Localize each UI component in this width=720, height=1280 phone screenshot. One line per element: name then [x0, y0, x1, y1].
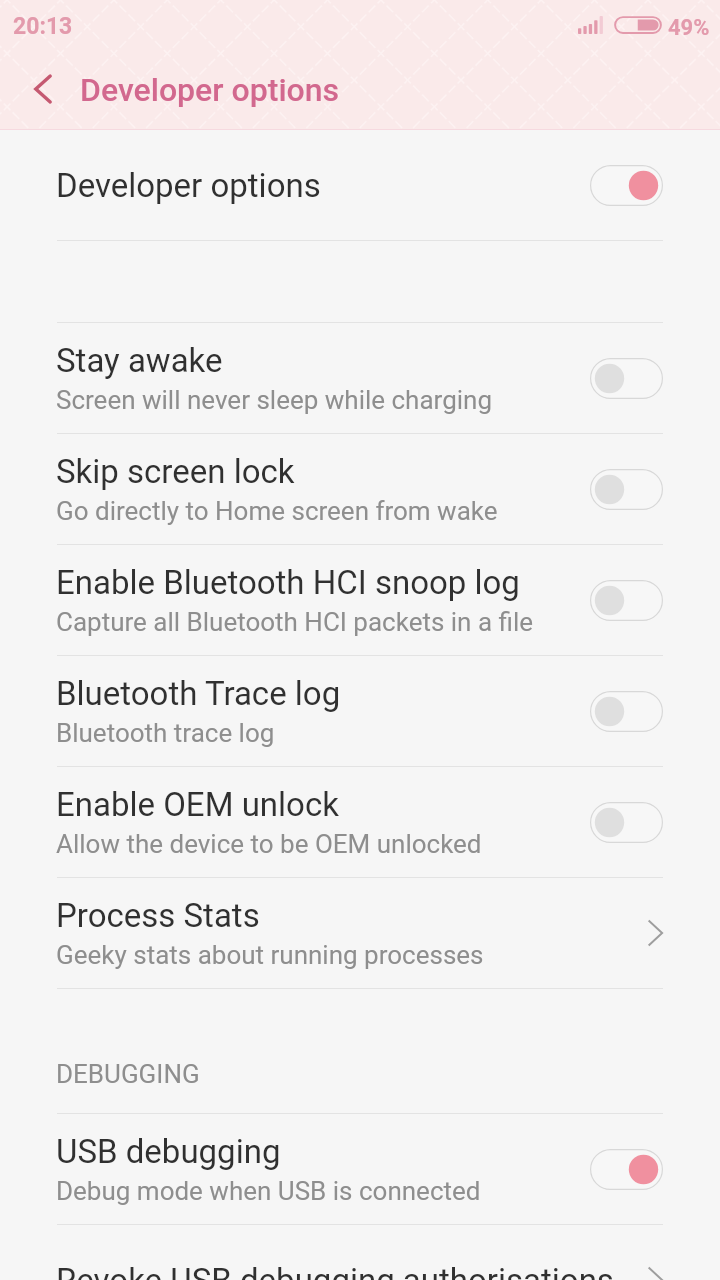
button[interactable]: Toggle on	[589, 159, 663, 211]
staticText: Process Stats	[56, 896, 260, 935]
button[interactable]: Toggle on	[589, 1143, 663, 1195]
staticText: Debug mode when USB is connected	[56, 1176, 481, 1206]
staticText: DEBUGGING	[56, 1059, 200, 1089]
staticText: Bluetooth Trace log	[56, 674, 341, 713]
staticText: Developer options	[80, 71, 340, 109]
button[interactable]: Stay awake	[0, 323, 720, 433]
staticText: Stay awake	[56, 341, 223, 380]
staticText: Allow the device to be OEM unlocked	[56, 829, 482, 859]
button[interactable]: USB debugging	[0, 1114, 720, 1224]
button[interactable]: Toggle off	[589, 685, 663, 737]
staticText: Bluetooth trace log	[56, 718, 275, 748]
button[interactable]: Open	[590, 1254, 663, 1280]
button[interactable]: Skip screen lock	[0, 434, 720, 544]
button[interactable]: Revoke USB debugging authorisations	[0, 1225, 720, 1280]
button[interactable]: Developer options	[0, 130, 720, 240]
button[interactable]: Bluetooth Trace log	[0, 656, 720, 766]
button[interactable]: Toggle off	[589, 463, 663, 515]
button[interactable]: Open	[590, 907, 663, 959]
staticText: 20:13	[13, 13, 73, 40]
button[interactable]: Enable Bluetooth HCI snoop log	[0, 545, 720, 655]
staticText: Capture all Bluetooth HCI packets in a f…	[56, 607, 534, 637]
staticText: Geeky stats about running processes	[56, 940, 484, 970]
button[interactable]: Toggle off	[589, 352, 663, 404]
button[interactable]: Back	[15, 61, 71, 117]
button[interactable]: Toggle off	[589, 574, 663, 626]
staticText: Revoke USB debugging authorisations	[56, 1261, 614, 1280]
button[interactable]: Process Stats	[0, 878, 720, 988]
staticText: Developer options	[56, 166, 321, 205]
staticText: Go directly to Home screen from wake	[56, 496, 498, 526]
staticText: Skip screen lock	[56, 452, 295, 491]
button[interactable]: Toggle off	[589, 796, 663, 848]
staticText: USB debugging	[56, 1132, 281, 1171]
staticText: Screen will never sleep while charging	[56, 385, 493, 415]
staticText: Enable Bluetooth HCI snoop log	[56, 563, 520, 602]
staticText: Enable OEM unlock	[56, 785, 339, 824]
staticText: 49%	[668, 15, 710, 41]
button[interactable]: Enable OEM unlock	[0, 767, 720, 877]
